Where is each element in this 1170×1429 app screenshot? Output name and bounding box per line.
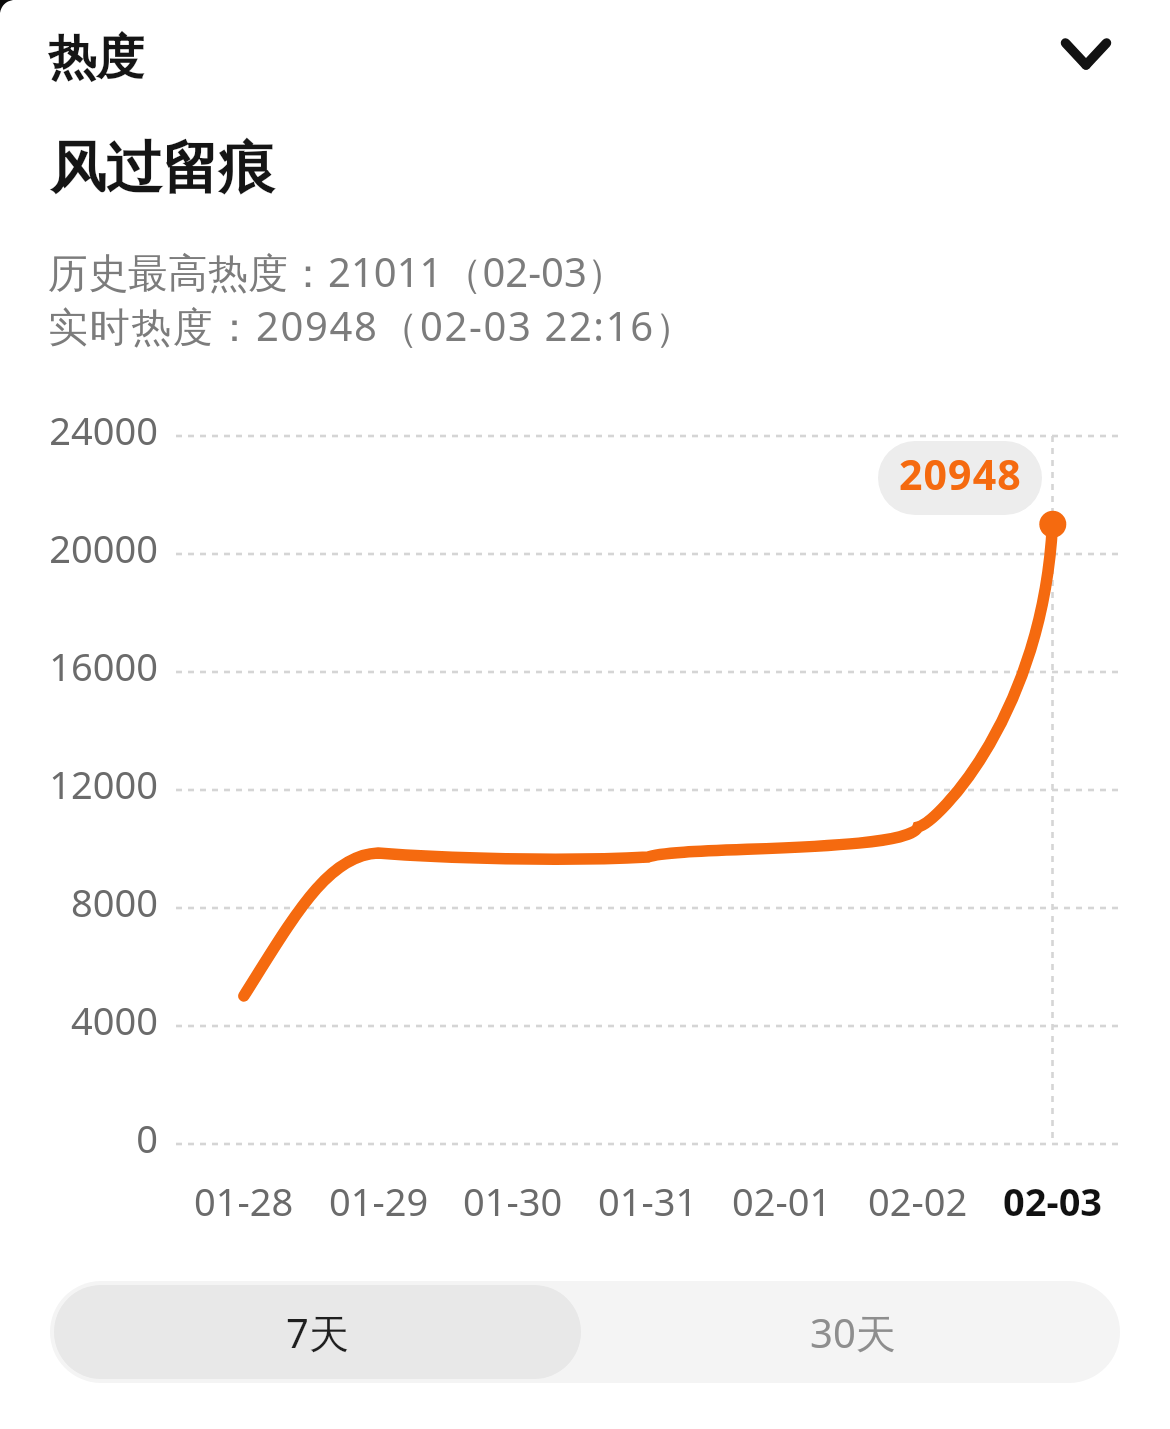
staticText: 24000: [49, 404, 158, 456]
staticText: 风过留痕: [50, 133, 274, 204]
staticText: 02-02: [868, 1175, 968, 1227]
staticText: 01-28: [194, 1175, 294, 1227]
button[interactable]: 7天: [54, 1285, 581, 1379]
staticText: 实时热度：20948（02-03 22:16）: [48, 298, 697, 353]
staticText: 7天: [286, 1305, 349, 1360]
staticText: 01-29: [329, 1175, 429, 1227]
staticText: 热度: [48, 28, 144, 88]
staticText: 12000: [49, 758, 158, 810]
staticText: 01-30: [463, 1175, 563, 1227]
staticText: 01-31: [598, 1175, 698, 1227]
staticText: 4000: [71, 994, 158, 1046]
staticText: 30天: [810, 1305, 896, 1360]
staticText: 20000: [49, 522, 158, 574]
staticText: 16000: [49, 640, 158, 692]
staticText: 0: [136, 1112, 158, 1164]
staticText: 02-01: [732, 1175, 832, 1227]
staticText: 02-03: [1003, 1175, 1103, 1227]
button[interactable]: 30天: [585, 1281, 1120, 1383]
staticText: 8000: [71, 876, 158, 928]
staticText: 20948: [899, 446, 1022, 502]
button[interactable]: Collapse: [1050, 18, 1122, 90]
staticText: 历史最高热度：21011（02-03）: [48, 244, 627, 299]
